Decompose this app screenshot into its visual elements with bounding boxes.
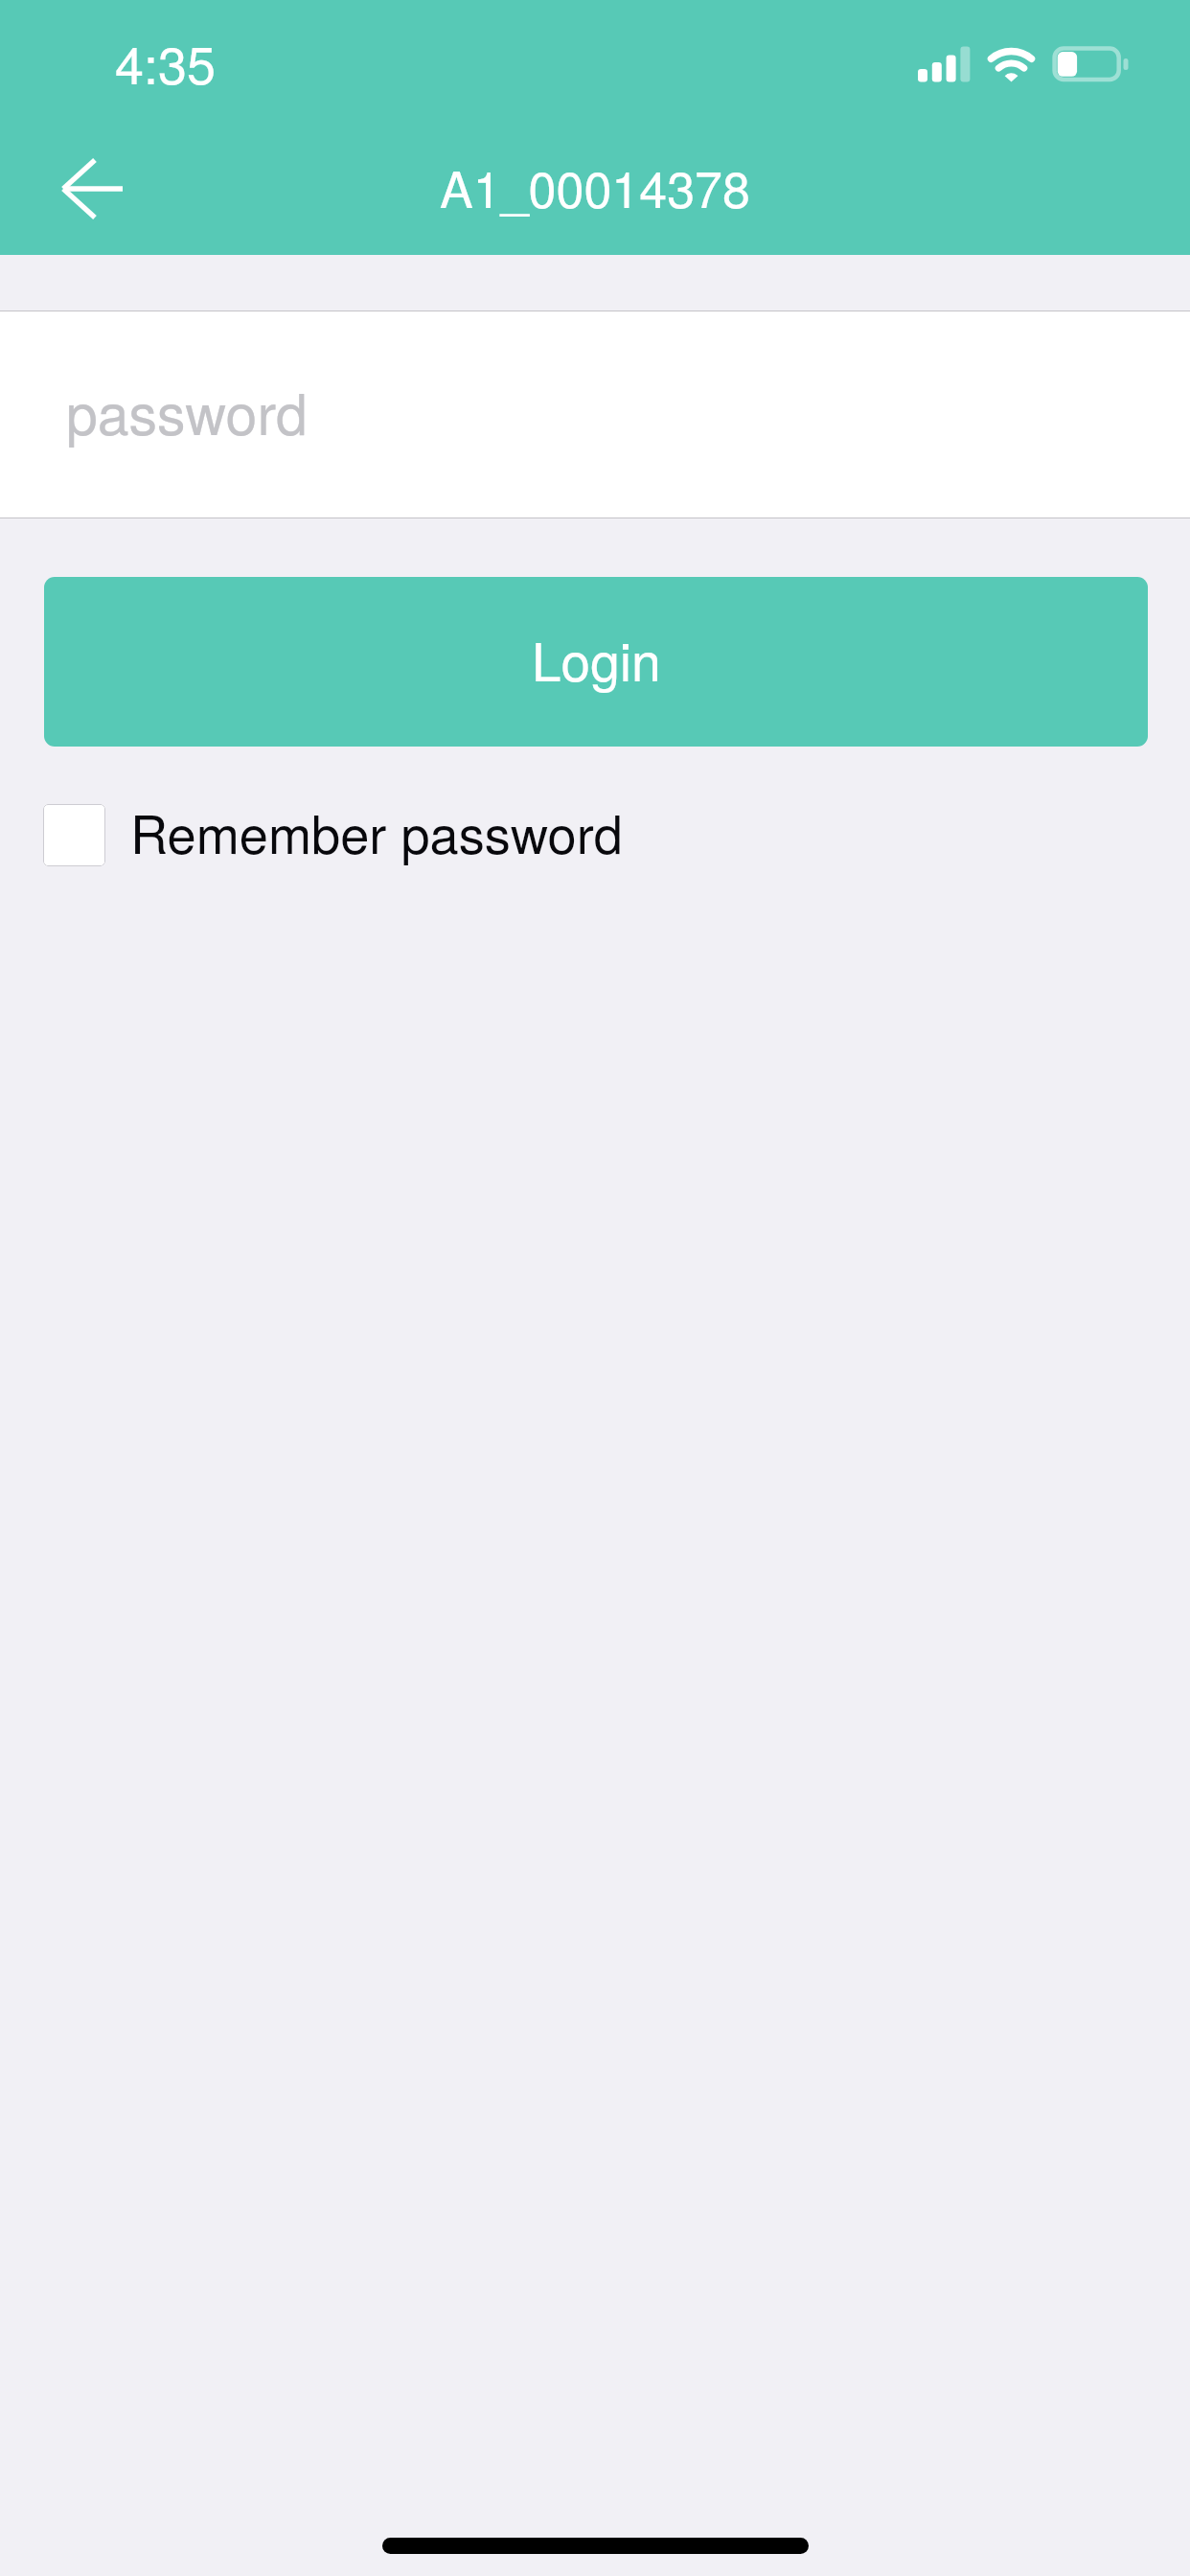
button[interactable]: password bbox=[0, 311, 1190, 517]
button[interactable]: Back bbox=[21, 136, 167, 241]
button[interactable]: Login bbox=[44, 577, 1148, 747]
staticText: A1_00014378 bbox=[0, 150, 1190, 221]
staticText: Remember password bbox=[130, 794, 623, 869]
staticText: password bbox=[66, 370, 308, 450]
button[interactable]: Remember password bbox=[43, 796, 637, 873]
staticText: Login bbox=[532, 621, 661, 697]
staticText: 4:35 bbox=[115, 25, 217, 99]
